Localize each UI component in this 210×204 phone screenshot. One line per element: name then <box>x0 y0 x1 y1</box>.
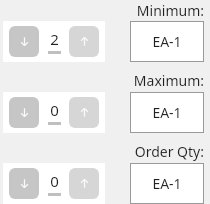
staticText: 0 <box>50 100 59 120</box>
button[interactable]: Increase <box>69 97 99 128</box>
staticText: 0 <box>50 171 59 191</box>
staticText: EA-1 <box>152 174 182 193</box>
staticText: Order Qty: <box>104 142 204 161</box>
staticText: EA-1 <box>152 32 182 51</box>
button[interactable]: Decrease <box>9 97 39 128</box>
button[interactable]: Decrease <box>9 26 39 57</box>
button[interactable]: EA-1 <box>130 92 204 133</box>
button[interactable]: EA-1 <box>130 21 204 62</box>
button[interactable]: Increase <box>69 168 99 199</box>
staticText: Maximum: <box>104 71 204 90</box>
button[interactable]: Decrease <box>9 168 39 199</box>
button[interactable]: EA-1 <box>130 163 204 204</box>
staticText: EA-1 <box>152 103 182 122</box>
staticText: 2 <box>50 29 59 49</box>
staticText: Minimum: <box>104 1 204 20</box>
button[interactable]: Increase <box>69 26 99 57</box>
